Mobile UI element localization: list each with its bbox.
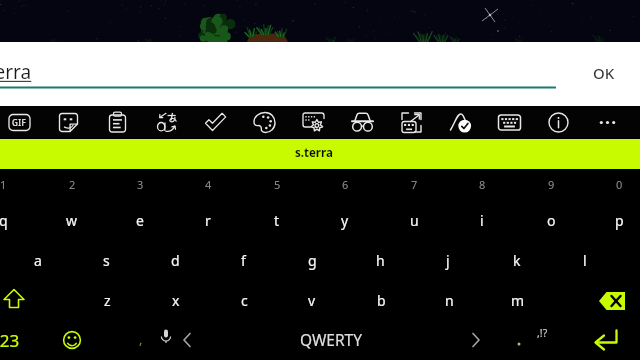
staticText: 4 (205, 177, 212, 192)
staticText: g (308, 251, 317, 270)
staticText: k (513, 251, 521, 270)
staticText: 7 (411, 177, 418, 192)
button[interactable]: 123 (0, 320, 20, 360)
button[interactable]: e (106, 200, 174, 240)
button[interactable]: ,!? (486, 320, 554, 360)
button[interactable]: 3 (106, 169, 174, 200)
staticText: GIF (12, 117, 27, 128)
staticText: , (139, 330, 143, 348)
button[interactable]: i (448, 200, 516, 240)
staticText: 123 (0, 329, 20, 352)
button[interactable]: 9 (517, 169, 585, 200)
button[interactable]: Clipboard (93, 106, 142, 139)
button[interactable]: Voice input (144, 320, 188, 360)
button[interactable]: u (380, 200, 448, 240)
button[interactable]: Resize keyboard (387, 106, 436, 139)
staticText: j (446, 251, 450, 270)
staticText: r (205, 211, 211, 230)
staticText: d (171, 251, 180, 270)
button[interactable]: y (311, 200, 379, 240)
button[interactable]: QWERTY (209, 320, 454, 360)
button[interactable]: g (278, 240, 346, 280)
staticText: i (480, 211, 484, 230)
staticText: 3 (137, 177, 144, 192)
button[interactable]: 5 (243, 169, 311, 200)
button[interactable]: s (72, 240, 140, 280)
button[interactable]: 0 (585, 169, 640, 200)
button[interactable]: b (347, 280, 415, 320)
staticText: w (66, 211, 78, 230)
button[interactable]: Spell check (191, 106, 240, 139)
button[interactable]: a (4, 240, 72, 280)
staticText: h (376, 251, 385, 270)
staticText: 5 (274, 177, 281, 192)
button[interactable]: Stickers (44, 106, 93, 139)
button[interactable]: v (278, 280, 346, 320)
button[interactable]: 2 (38, 169, 106, 200)
staticText: 6 (342, 177, 349, 192)
staticText: 9 (548, 177, 555, 192)
button[interactable]: More options (583, 106, 632, 139)
staticText: s.terra (295, 145, 333, 161)
staticText: z (104, 291, 111, 310)
button[interactable]: Switch keyboard (485, 106, 534, 139)
button[interactable]: l (551, 240, 619, 280)
button[interactable]: z (73, 280, 141, 320)
staticText: c (241, 291, 248, 310)
button[interactable]: OK (562, 42, 640, 106)
staticText: q (0, 211, 8, 230)
button[interactable]: Theme (240, 106, 289, 139)
staticText: p (615, 211, 624, 230)
staticText: f (241, 251, 246, 270)
staticText: OK (593, 63, 615, 83)
button[interactable]: c (210, 280, 278, 320)
button[interactable]: n (415, 280, 483, 320)
button[interactable]: w (38, 200, 106, 240)
button[interactable]: , (107, 320, 175, 360)
button[interactable]: Glide typing (436, 106, 485, 139)
button[interactable]: r (174, 200, 242, 240)
button[interactable]: Info (534, 106, 583, 139)
button[interactable]: o (517, 200, 585, 240)
button[interactable]: f (209, 240, 277, 280)
button[interactable]: 4 (174, 169, 242, 200)
staticText: 1 (0, 177, 7, 192)
staticText: s (103, 251, 110, 270)
button[interactable]: Emoji (38, 320, 106, 360)
button[interactable]: s.terra (239, 139, 389, 169)
button[interactable]: j (414, 240, 482, 280)
button[interactable]: Translate (142, 106, 191, 139)
button[interactable]: 6 (311, 169, 379, 200)
button[interactable]: Keyboard settings (289, 106, 338, 139)
staticText: 8 (479, 177, 486, 192)
staticText: v (308, 291, 316, 310)
button[interactable]: k (483, 240, 551, 280)
button[interactable]: 8 (448, 169, 516, 200)
button[interactable]: p (585, 200, 640, 240)
button[interactable]: h (346, 240, 414, 280)
button[interactable]: Shift (0, 280, 34, 320)
button[interactable]: 1 (0, 169, 37, 200)
button[interactable]: Enter (572, 320, 640, 360)
staticText: QWERTY (300, 329, 363, 350)
staticText: 2 (69, 177, 76, 192)
staticText: n (445, 291, 454, 310)
button[interactable]: Previous (165, 320, 209, 360)
button[interactable]: m (484, 280, 552, 320)
staticText: l (583, 251, 587, 270)
staticText: u (410, 211, 419, 230)
button[interactable]: 7 (380, 169, 448, 200)
staticText: y (341, 211, 349, 230)
button[interactable]: x (142, 280, 210, 320)
staticText: 0 (616, 177, 623, 192)
staticText: a (34, 251, 42, 270)
button[interactable]: q (0, 200, 37, 240)
button[interactable]: GIF (0, 106, 44, 139)
button[interactable]: d (141, 240, 209, 280)
button[interactable]: t (243, 200, 311, 240)
button[interactable]: Backspace (572, 280, 640, 320)
button[interactable]: Next (454, 320, 498, 360)
staticText: m (511, 291, 525, 310)
staticText: ars.terra (0, 59, 32, 85)
button[interactable]: Incognito mode (338, 106, 387, 139)
